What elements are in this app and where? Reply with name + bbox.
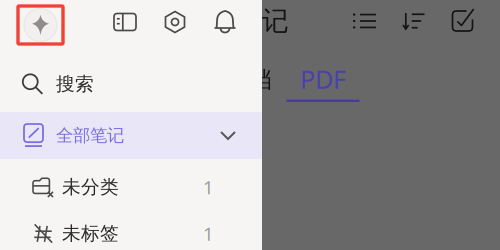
button[interactable]: Select notes <box>438 1 487 41</box>
staticText: 1 <box>203 175 214 199</box>
button[interactable]: Notifications <box>200 1 250 43</box>
button[interactable]: PDF <box>272 58 374 102</box>
staticText: 1 <box>203 221 214 246</box>
button[interactable]: 未标签 <box>0 213 262 250</box>
button[interactable]: Sort <box>389 1 438 41</box>
staticText: 搜索 <box>56 72 94 95</box>
staticText: 未标签 <box>62 222 119 245</box>
button[interactable]: 搜索 <box>0 64 262 104</box>
button[interactable]: 全部笔记 <box>0 112 262 159</box>
button[interactable]: List view <box>340 1 389 41</box>
staticText: 记 <box>262 5 289 37</box>
button[interactable]: 未分类 <box>0 162 262 212</box>
button[interactable]: Toggle sidebar <box>100 1 150 43</box>
button[interactable]: AI assistant <box>15 1 64 43</box>
staticText: 未分类 <box>62 175 119 198</box>
staticText: PDF <box>300 62 346 96</box>
staticText: 档 <box>249 66 272 94</box>
staticText: 全部笔记 <box>56 125 124 146</box>
button[interactable]: Settings <box>150 1 200 43</box>
